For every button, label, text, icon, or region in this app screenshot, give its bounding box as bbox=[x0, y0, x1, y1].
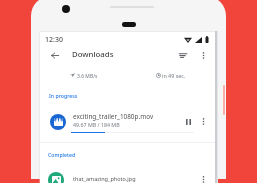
staticText: in 49 sec. bbox=[162, 72, 186, 79]
button[interactable]: Video file bbox=[50, 114, 66, 130]
button[interactable]: Downloads bbox=[72, 49, 114, 60]
button[interactable]: Sort bbox=[175, 48, 190, 63]
button[interactable]: More options bbox=[196, 48, 211, 63]
staticText: 12:30 bbox=[45, 35, 63, 45]
button[interactable]: Pause bbox=[181, 114, 196, 129]
button[interactable]: that_amazing_photo.jpg bbox=[73, 175, 183, 182]
button[interactable]: Completed bbox=[48, 151, 76, 158]
button[interactable]: More options bbox=[196, 114, 211, 129]
button[interactable]: More options bbox=[196, 172, 211, 183]
staticText: 3.6 MB/s bbox=[77, 73, 98, 80]
button[interactable]: In progress bbox=[49, 92, 78, 99]
staticText: In progress bbox=[49, 92, 78, 99]
button[interactable]: Back bbox=[47, 48, 62, 63]
staticText: Completed bbox=[48, 151, 76, 158]
staticText: Downloads bbox=[72, 49, 114, 60]
button[interactable]: Image file bbox=[48, 172, 64, 183]
button[interactable]: exciting_trailer_1080p.mov bbox=[73, 112, 193, 121]
staticText: that_amazing_photo.jpg bbox=[73, 175, 136, 182]
staticText: 49.67 MB / 184 MB bbox=[73, 121, 120, 128]
staticText: exciting_trailer_1080p.mov bbox=[73, 112, 154, 121]
